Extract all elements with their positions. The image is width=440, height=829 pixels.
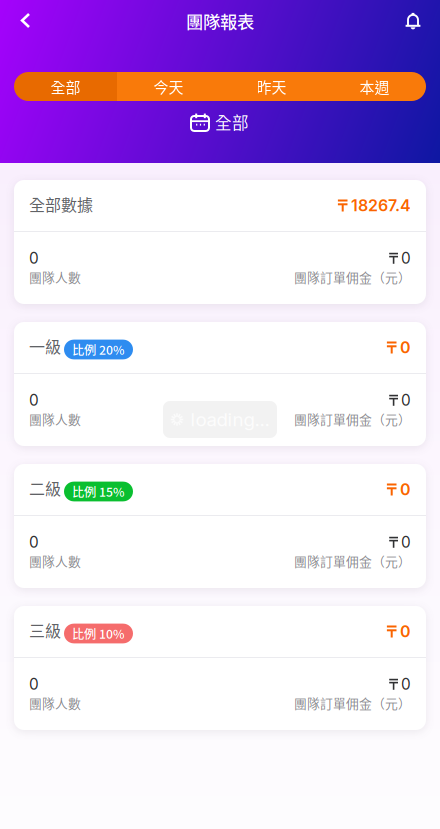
staticText: loading... bbox=[190, 408, 269, 431]
button[interactable]: 今天 bbox=[117, 72, 220, 101]
button[interactable]: Back bbox=[0, 0, 52, 42]
staticText: 今天 bbox=[153, 76, 183, 97]
button[interactable]: 本週 bbox=[323, 72, 426, 101]
staticText: 0 bbox=[400, 338, 411, 357]
staticText: 全部數據 bbox=[29, 192, 93, 216]
staticText: 0 bbox=[401, 533, 411, 552]
staticText: 0 bbox=[400, 480, 411, 499]
staticText: 0 bbox=[29, 249, 39, 268]
staticText: 團隊訂單佣金（元） bbox=[294, 552, 411, 570]
button[interactable]: 全部 bbox=[14, 72, 117, 101]
staticText: 團隊訂單佣金（元） bbox=[294, 410, 411, 428]
staticText: 三級 bbox=[29, 618, 61, 642]
staticText: 一級 bbox=[29, 334, 61, 358]
staticText: 團隊人數 bbox=[29, 268, 81, 286]
staticText: 0 bbox=[29, 533, 39, 552]
button[interactable]: Notifications bbox=[386, 0, 440, 42]
staticText: 比例 10% bbox=[72, 625, 125, 642]
staticText: 團隊人數 bbox=[29, 552, 81, 570]
staticText: 0 bbox=[29, 675, 39, 694]
staticText: 團隊報表 bbox=[186, 8, 254, 34]
staticText: 昨天 bbox=[256, 76, 286, 97]
staticText: 比例 20% bbox=[72, 341, 125, 358]
staticText: 團隊人數 bbox=[29, 410, 81, 428]
staticText: 0 bbox=[401, 391, 411, 410]
staticText: 本週 bbox=[359, 76, 389, 97]
button[interactable]: 全部 bbox=[181, 105, 259, 139]
staticText: 團隊人數 bbox=[29, 694, 81, 712]
staticText: 0 bbox=[401, 249, 411, 268]
staticText: 全部 bbox=[215, 110, 249, 134]
staticText: 0 bbox=[400, 622, 411, 641]
staticText: 0 bbox=[401, 675, 411, 694]
staticText: 0 bbox=[29, 391, 39, 410]
staticText: 18267.4 bbox=[351, 196, 411, 215]
staticText: 全部 bbox=[50, 76, 80, 97]
staticText: 團隊訂單佣金（元） bbox=[294, 694, 411, 712]
staticText: 團隊訂單佣金（元） bbox=[294, 268, 411, 286]
staticText: 比例 15% bbox=[72, 483, 125, 500]
staticText: 二級 bbox=[29, 476, 61, 500]
button[interactable]: 昨天 bbox=[220, 72, 323, 101]
